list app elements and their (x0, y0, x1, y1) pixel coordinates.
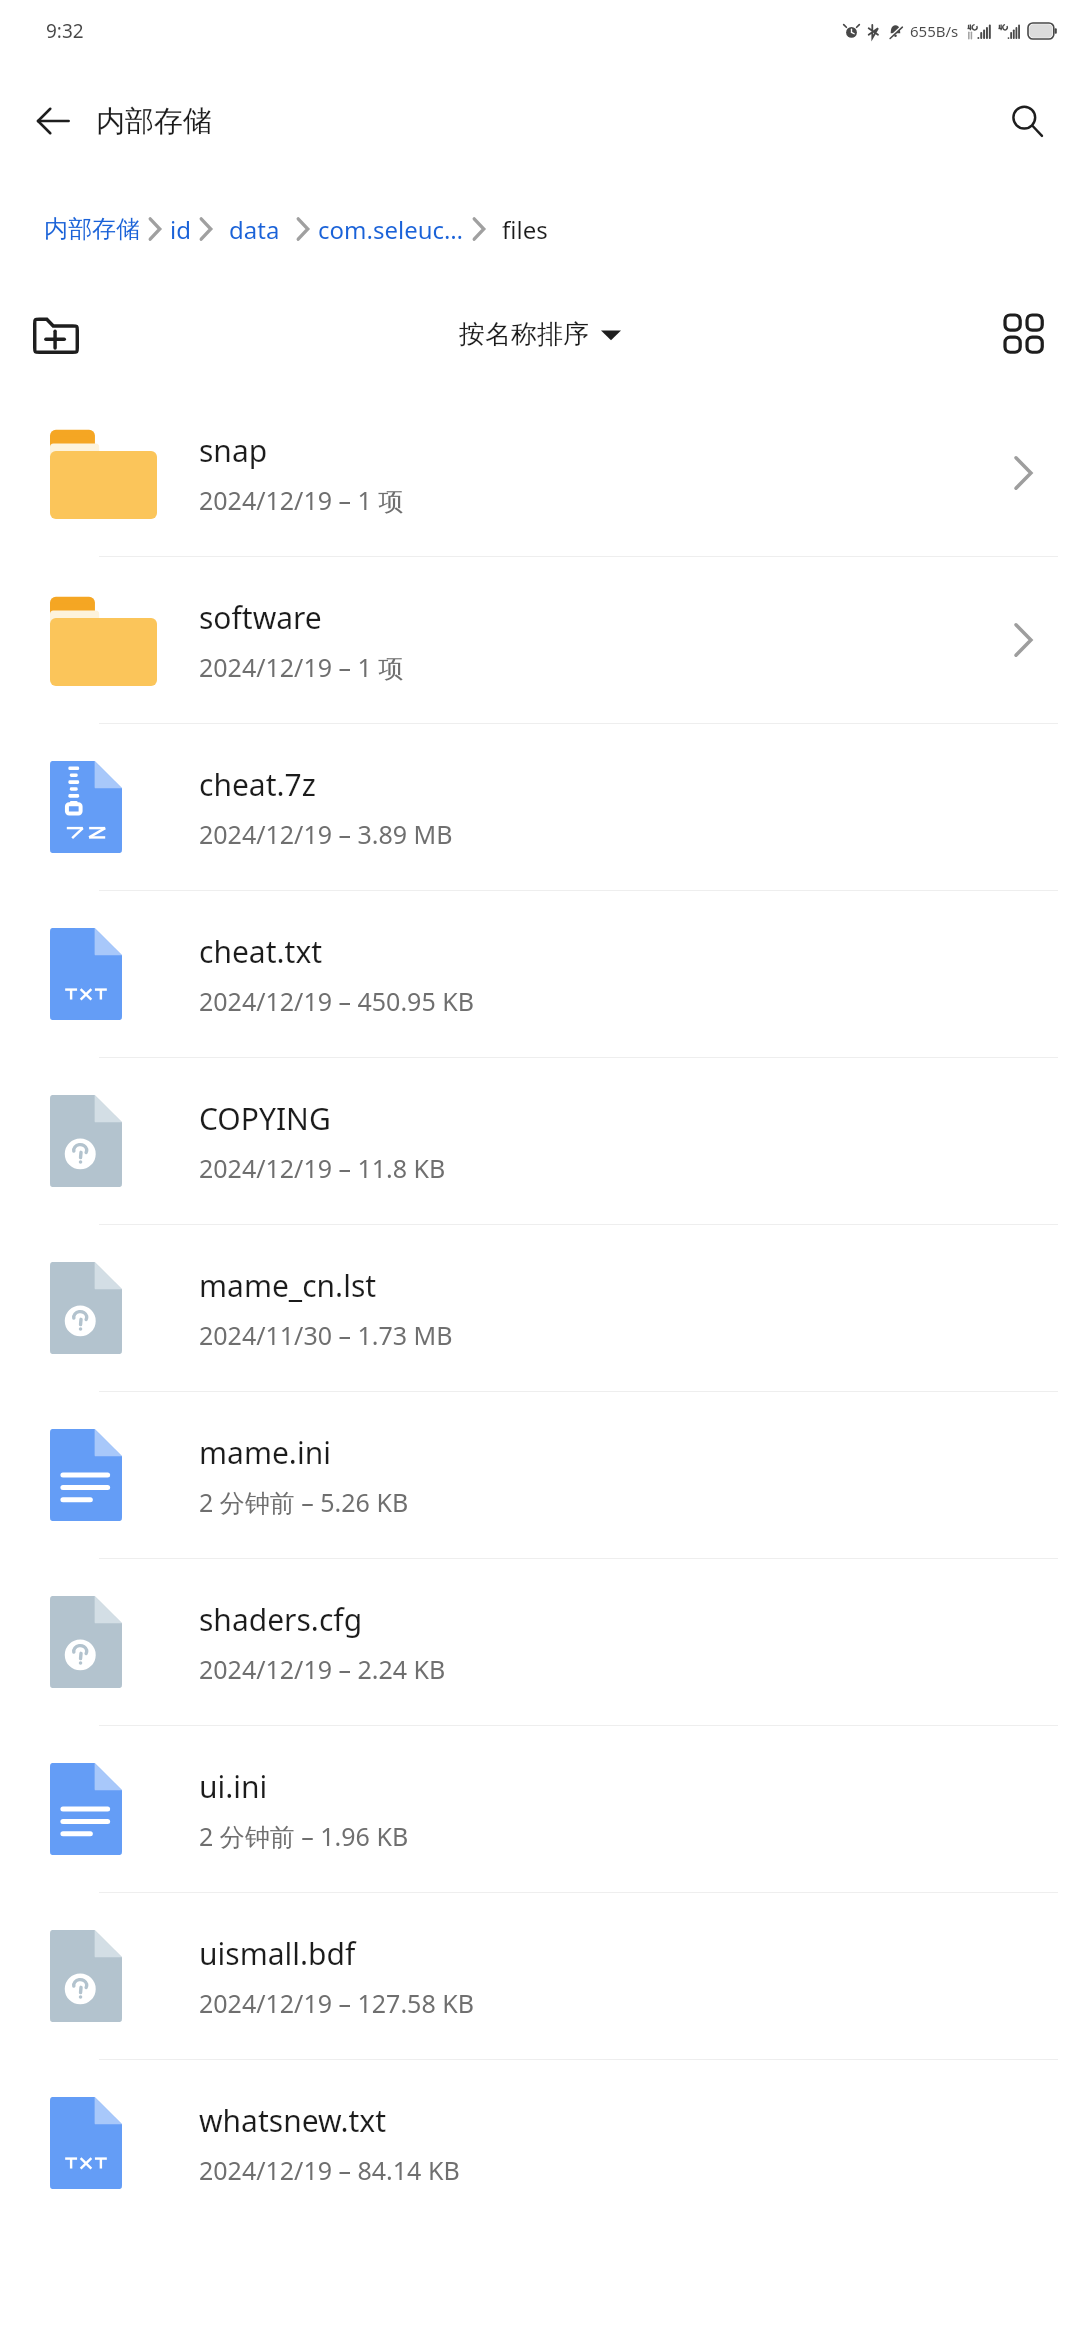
staticText: files (502, 213, 548, 246)
button[interactable]: uismall.bdf (0, 1893, 1080, 2059)
staticText: snap (199, 430, 268, 471)
button[interactable]: ui.ini (0, 1726, 1080, 1892)
button[interactable]: COPYING (0, 1058, 1080, 1224)
staticText: 2024/12/19 – 2.24 KB (199, 1652, 446, 1686)
staticText: 2024/12/19 – 127.58 KB (199, 1986, 474, 2020)
button[interactable]: mame.ini (0, 1392, 1080, 1558)
staticText: cheat.txt (199, 931, 323, 972)
button[interactable]: Grid view (990, 300, 1058, 368)
staticText: shaders.cfg (199, 1599, 363, 1640)
button[interactable]: cheat.txt (0, 891, 1080, 1057)
staticText: 2024/12/19 – 84.14 KB (199, 2153, 460, 2187)
staticText: com.seleuc… (318, 213, 464, 246)
button[interactable]: snap (0, 390, 1080, 556)
staticText: whatsnew.txt (199, 2100, 386, 2141)
staticText: 2024/11/30 – 1.73 MB (199, 1318, 453, 1352)
staticText: COPYING (199, 1098, 331, 1139)
staticText: 2024/12/19 – 11.8 KB (199, 1151, 446, 1185)
staticText: 2024/12/19 – 450.95 KB (199, 984, 474, 1018)
staticText: 2024/12/19 – 1 项 (199, 650, 404, 684)
button[interactable]: software (0, 557, 1080, 723)
staticText: data (229, 213, 280, 246)
staticText: id (170, 213, 191, 246)
button[interactable]: mame_cn.lst (0, 1225, 1080, 1391)
button[interactable]: 内部存储 (44, 214, 140, 244)
staticText: software (199, 597, 322, 638)
staticText: 9:32 (46, 18, 84, 44)
button[interactable]: cheat.7z (0, 724, 1080, 890)
staticText: uismall.bdf (199, 1933, 356, 1974)
button[interactable]: Back (22, 90, 84, 152)
staticText: 2024/12/19 – 3.89 MB (199, 817, 453, 851)
staticText: 内部存储 (44, 214, 140, 244)
button[interactable]: 按名称排序 (459, 318, 621, 351)
button[interactable]: Search (996, 90, 1058, 152)
staticText: 655B/s (910, 21, 959, 41)
button[interactable]: New folder (22, 300, 90, 368)
staticText: mame.ini (199, 1432, 331, 1473)
button[interactable]: data (229, 213, 280, 246)
button[interactable]: files (502, 213, 548, 246)
button[interactable]: com.seleuc… (318, 213, 464, 246)
staticText: cheat.7z (199, 764, 316, 805)
button[interactable]: id (170, 213, 191, 246)
staticText: 2 分钟前 – 1.96 KB (199, 1819, 409, 1853)
staticText: 内部存储 (96, 103, 212, 140)
staticText: ui.ini (199, 1766, 268, 1807)
button[interactable]: whatsnew.txt (0, 2060, 1080, 2226)
staticText: 2 分钟前 – 5.26 KB (199, 1485, 409, 1519)
staticText: 2024/12/19 – 1 项 (199, 483, 404, 517)
button[interactable]: shaders.cfg (0, 1559, 1080, 1725)
staticText: mame_cn.lst (199, 1265, 377, 1306)
staticText: 按名称排序 (459, 318, 589, 351)
